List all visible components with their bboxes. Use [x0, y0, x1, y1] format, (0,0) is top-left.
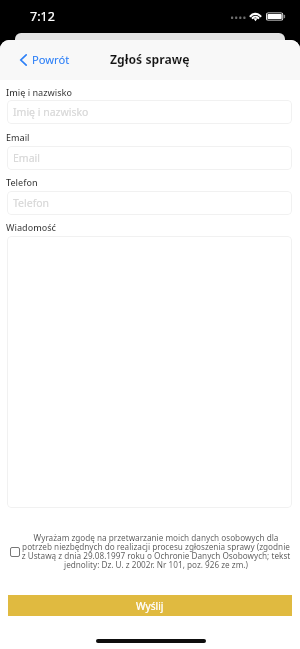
- staticText: Zgłoś sprawę: [110, 51, 190, 68]
- button[interactable]: Telefon: [7, 191, 292, 215]
- staticText: Wiadomość: [6, 221, 56, 233]
- staticText: Email: [6, 131, 30, 143]
- staticText: Wyrażam zgodę na przetwarzanie moich dan…: [21, 532, 291, 571]
- staticText: Imię i nazwisko: [6, 86, 73, 98]
- staticText: Powrót: [32, 52, 70, 67]
- staticText: Wyślij: [136, 599, 164, 613]
- staticText: 7:12: [30, 8, 55, 25]
- button[interactable]: Zgoda na przetwarzanie danych: [10, 547, 20, 557]
- staticText: Email: [13, 151, 40, 165]
- button[interactable]: Email: [7, 146, 292, 170]
- button[interactable]: Powrót: [0, 47, 80, 74]
- button[interactable]: Wyślij: [8, 595, 292, 616]
- staticText: Telefon: [13, 196, 50, 210]
- button[interactable]: Imię i nazwisko: [7, 100, 292, 124]
- staticText: Telefon: [6, 176, 38, 188]
- staticText: Imię i nazwisko: [13, 105, 89, 119]
